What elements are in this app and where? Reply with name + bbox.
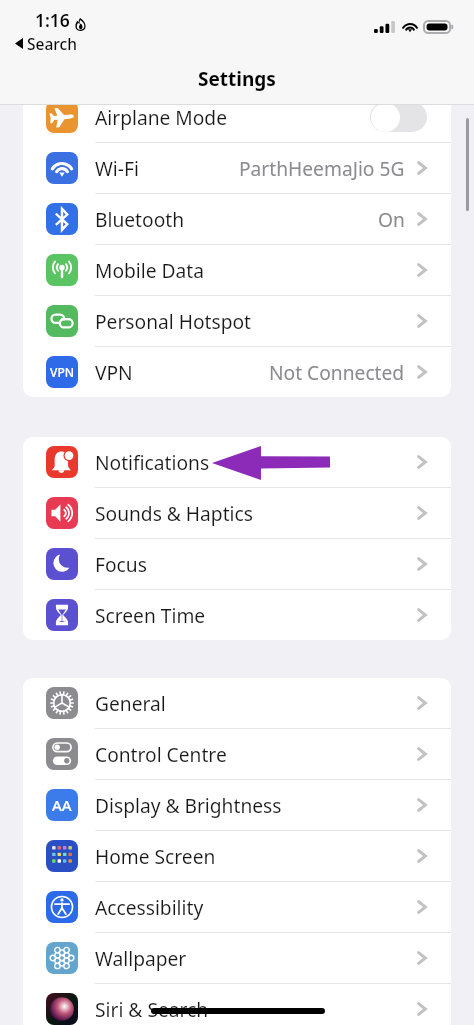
- button[interactable]: Mobile Data: [23, 245, 451, 296]
- other: Annotation arrow pointing at Notificatio…: [212, 446, 330, 480]
- staticText: Sounds & Haptics: [95, 500, 253, 526]
- button[interactable]: Screen Time: [23, 590, 451, 640]
- button[interactable]: AA: [23, 780, 451, 831]
- staticText: ParthHeemaJio 5G: [239, 155, 405, 181]
- staticText: Screen Time: [95, 602, 206, 628]
- staticText: Not Connected: [269, 359, 405, 385]
- staticText: Wi-Fi: [95, 155, 139, 181]
- staticText: Personal Hotspot: [95, 308, 251, 334]
- staticText: Home Screen: [95, 843, 216, 869]
- button[interactable]: Wallpaper: [23, 933, 451, 984]
- button[interactable]: Notifications: [23, 437, 451, 488]
- button[interactable]: General: [23, 678, 451, 729]
- button[interactable]: Airplane Mode toggle: [370, 102, 427, 132]
- staticText: Accessibility: [95, 894, 204, 920]
- staticText: AA: [52, 795, 72, 815]
- button[interactable]: Wi-Fi: [23, 143, 451, 194]
- button[interactable]: Accessibility: [23, 882, 451, 933]
- staticText: Mobile Data: [95, 257, 204, 283]
- staticText: Control Centre: [95, 741, 227, 767]
- staticText: General: [95, 690, 166, 716]
- staticText: Notifications: [95, 449, 210, 475]
- button[interactable]: VPN: [23, 347, 451, 397]
- button[interactable]: Bluetooth: [23, 194, 451, 245]
- staticText: Siri & Search: [95, 996, 209, 1022]
- button[interactable]: Airplane Mode: [23, 92, 451, 143]
- button[interactable]: Focus: [23, 539, 451, 590]
- staticText: Airplane Mode: [95, 104, 227, 130]
- staticText: On: [378, 206, 405, 232]
- staticText: VPN: [95, 359, 133, 385]
- staticText: Search: [27, 33, 77, 54]
- staticText: Display & Brightness: [95, 792, 282, 818]
- staticText: 1:16: [35, 8, 70, 32]
- staticText: VPN: [50, 364, 75, 380]
- staticText: Settings: [198, 66, 276, 92]
- button[interactable]: Search: [10, 29, 82, 58]
- button[interactable]: Personal Hotspot: [23, 296, 451, 347]
- button[interactable]: Home Screen: [23, 831, 451, 882]
- staticText: Bluetooth: [95, 206, 185, 232]
- button[interactable]: Sounds & Haptics: [23, 488, 451, 539]
- button[interactable]: Control Centre: [23, 729, 451, 780]
- button[interactable]: Siri & Search: [23, 984, 451, 1025]
- staticText: Focus: [95, 551, 147, 577]
- staticText: Wallpaper: [95, 945, 187, 971]
